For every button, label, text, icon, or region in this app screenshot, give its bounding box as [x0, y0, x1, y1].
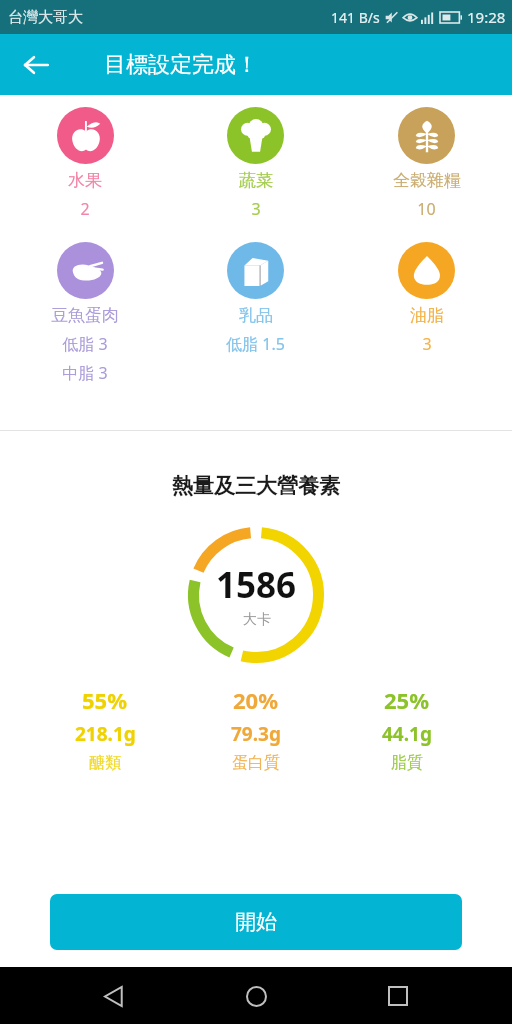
staticText: 19:28 [467, 7, 506, 27]
staticText: 25% [384, 685, 430, 715]
staticText: 55% [82, 685, 128, 715]
staticText: 141 B/s [331, 8, 380, 27]
button[interactable]: 25% [331, 685, 482, 773]
button[interactable]: Home [228, 968, 284, 1024]
staticText: 218.1g [75, 721, 136, 747]
staticText: 3 [422, 333, 432, 355]
button[interactable]: Back [14, 43, 58, 87]
staticText: 10 [417, 198, 436, 220]
staticText: 3 [251, 198, 261, 220]
staticText: 44.1g [382, 721, 432, 747]
staticText: 中脂 3 [62, 362, 108, 384]
staticText: 蔬菜 [239, 170, 273, 191]
staticText: 油脂 [410, 305, 444, 326]
staticText: 全穀雜糧 [393, 170, 461, 191]
staticText: 醣類 [89, 753, 121, 773]
button[interactable]: Back [86, 968, 142, 1024]
button[interactable]: 開始 [50, 894, 462, 950]
staticText: 脂質 [391, 753, 423, 773]
staticText: 1586 [216, 561, 297, 609]
staticText: 20% [233, 685, 279, 715]
staticText: 大卡 [243, 611, 271, 629]
staticText: 蛋白質 [232, 753, 280, 773]
staticText: 豆魚蛋肉 [51, 305, 119, 326]
button[interactable]: 水果 [0, 107, 170, 220]
staticText: 水果 [68, 170, 102, 191]
button[interactable]: 全穀雜糧 [341, 107, 512, 220]
button[interactable]: 乳品 [170, 242, 341, 355]
staticText: 2 [80, 198, 90, 220]
staticText: 低脂 1.5 [226, 333, 285, 355]
staticText: 開始 [235, 909, 277, 935]
button[interactable]: 55% [30, 685, 180, 773]
button[interactable]: 豆魚蛋肉 [0, 242, 170, 384]
staticText: 目標設定完成！ [104, 51, 258, 79]
button[interactable]: 20% [180, 685, 331, 773]
staticText: 熱量及三大營養素 [172, 473, 340, 499]
staticText: 台灣大哥大 [8, 8, 83, 27]
button[interactable]: Recents [370, 968, 426, 1024]
staticText: 乳品 [239, 305, 273, 326]
staticText: 低脂 3 [62, 333, 108, 355]
button[interactable]: 蔬菜 [170, 107, 341, 220]
button[interactable]: 油脂 [341, 242, 512, 355]
staticText: 79.3g [231, 721, 281, 747]
